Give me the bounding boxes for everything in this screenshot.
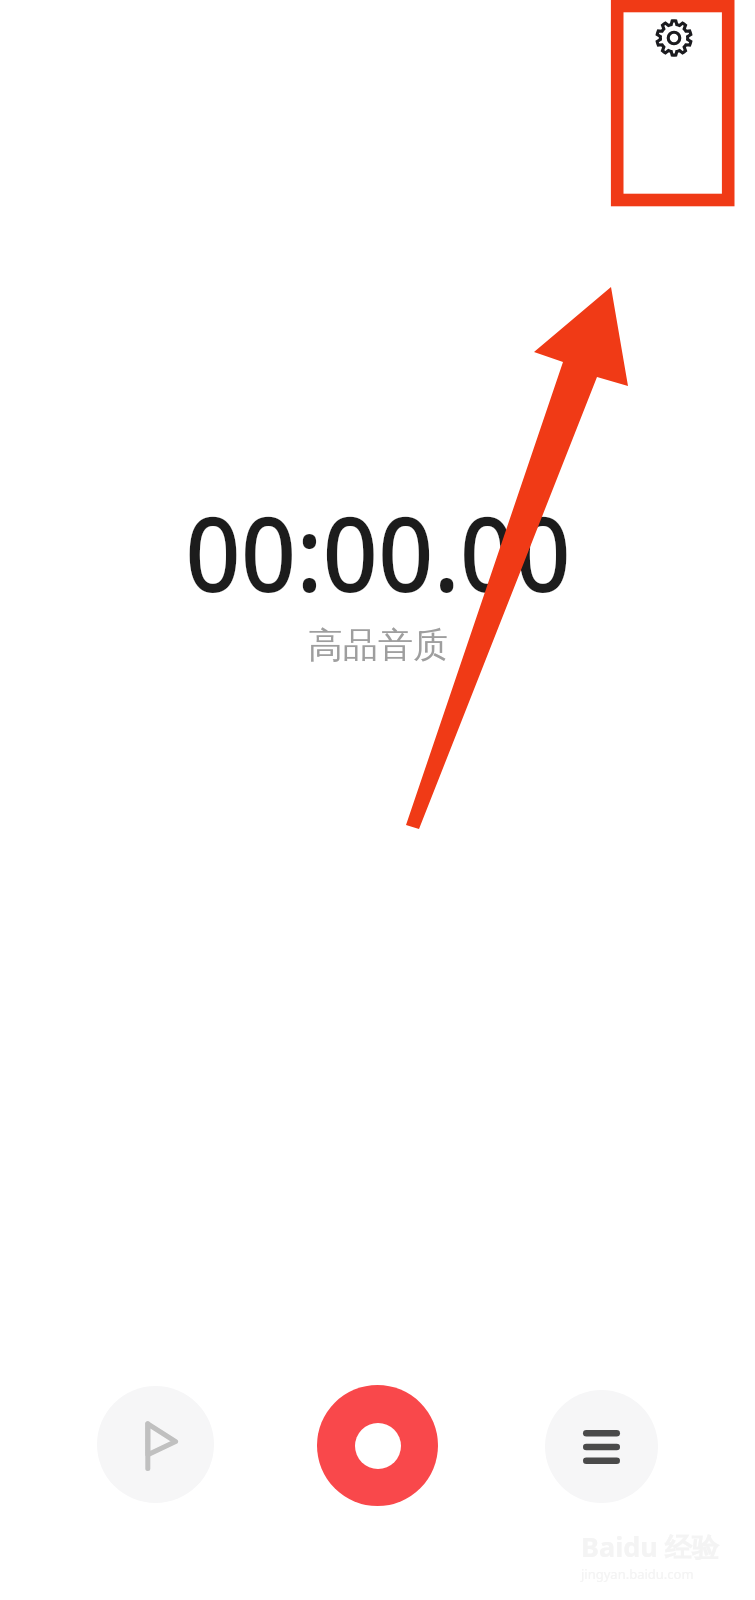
staticText: 高品音质	[308, 623, 448, 667]
button[interactable]: Recordings list	[545, 1390, 658, 1503]
button[interactable]: Play	[97, 1386, 214, 1503]
button[interactable]: Settings	[611, 0, 735, 77]
button[interactable]: Record	[317, 1385, 438, 1506]
staticText: Baidu 经验	[581, 1528, 719, 1565]
staticText: 00:00.00	[185, 482, 571, 622]
staticText: jingyan.baidu.com	[581, 1565, 694, 1583]
